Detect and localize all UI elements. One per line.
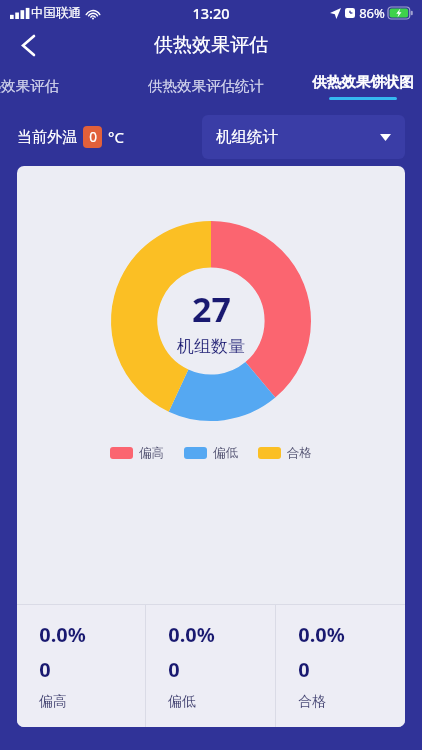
button[interactable]: 0.0%: [146, 605, 275, 727]
button[interactable]: 供热效果评估: [0, 64, 59, 108]
staticText: 0: [39, 656, 51, 683]
staticText: 偏低: [168, 693, 196, 711]
staticText: 中国联通: [31, 5, 81, 21]
staticText: 机组统计: [216, 127, 278, 147]
staticText: 0.0%: [298, 621, 345, 648]
button[interactable]: 供热效果饼状图: [312, 64, 414, 108]
button[interactable]: 返回: [8, 26, 48, 64]
staticText: 0: [168, 656, 180, 683]
staticText: 偏高: [139, 445, 164, 461]
button[interactable]: 机组统计: [202, 115, 405, 159]
staticText: 供热效果评估: [0, 77, 59, 95]
staticText: 合格: [287, 445, 312, 461]
button[interactable]: 偏高: [110, 445, 164, 461]
staticText: 供热效果饼状图: [312, 73, 414, 91]
staticText: 0.0%: [168, 621, 215, 648]
staticText: 合格: [298, 693, 326, 711]
staticText: 机组数量: [177, 336, 245, 357]
staticText: 0.0%: [39, 621, 86, 648]
staticText: 偏高: [39, 693, 67, 711]
staticText: 当前外温: [17, 128, 77, 147]
staticText: 27: [192, 286, 231, 332]
staticText: 86%: [359, 4, 385, 22]
staticText: 供热效果评估: [154, 33, 268, 57]
button[interactable]: 偏低: [184, 445, 238, 461]
staticText: 13:20: [192, 3, 230, 23]
button[interactable]: 0.0%: [17, 605, 145, 727]
staticText: 0: [298, 656, 310, 683]
button[interactable]: 0.0%: [276, 605, 405, 727]
button[interactable]: 合格: [258, 445, 312, 461]
staticText: 偏低: [213, 445, 238, 461]
staticText: °C: [108, 127, 124, 147]
button[interactable]: 供热效果评估统计: [148, 64, 264, 108]
staticText: 供热效果评估统计: [148, 77, 264, 95]
staticText: 0: [89, 128, 97, 146]
